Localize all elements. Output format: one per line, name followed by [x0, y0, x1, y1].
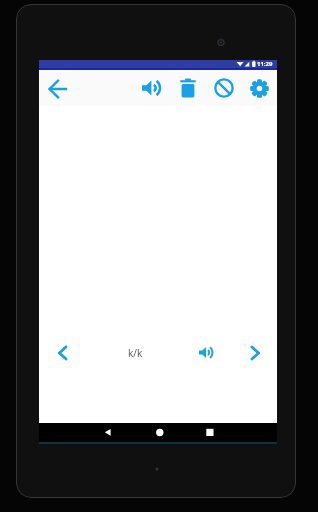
button[interactable] — [242, 71, 277, 106]
button[interactable] — [149, 423, 171, 442]
button[interactable] — [196, 342, 216, 362]
button[interactable] — [199, 423, 221, 442]
button[interactable] — [170, 70, 206, 106]
button[interactable] — [97, 423, 119, 442]
staticText: 11:29 — [257, 60, 273, 68]
button[interactable] — [40, 71, 75, 106]
button[interactable] — [134, 70, 170, 106]
button[interactable] — [54, 341, 78, 365]
button[interactable] — [240, 341, 264, 365]
staticText: k/k — [128, 346, 143, 360]
button[interactable] — [206, 70, 242, 106]
